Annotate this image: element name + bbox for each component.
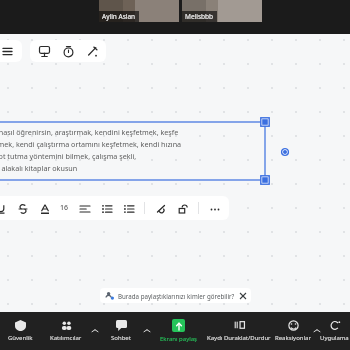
button[interactable]: Sohbet options	[144, 328, 150, 334]
button[interactable]: Katılımcılar options	[92, 328, 98, 334]
button[interactable]: 16	[60, 203, 69, 213]
staticText: e: kendin nasıl öğrenirsin, araştırmak, …	[0, 127, 179, 137]
button[interactable]: Güvenlik	[0, 312, 40, 350]
button[interactable]: Sohbet	[98, 312, 150, 350]
button[interactable]: Reaksiyonlar options	[314, 328, 320, 334]
button[interactable]: Close	[240, 293, 246, 299]
staticText: Katılımcılar	[50, 334, 82, 342]
staticText: Ekranı paylaş	[160, 335, 197, 343]
button[interactable]: Align	[78, 202, 91, 215]
button[interactable]: Kaydı Duraklat/Durdur	[206, 312, 272, 350]
button[interactable]: Bulleted list	[100, 202, 113, 215]
staticText: 16	[60, 203, 69, 213]
button[interactable]: Uygulamalar	[320, 312, 350, 350]
button[interactable]: Present	[37, 44, 51, 58]
staticText: temini bilmek, kendi çalıştırma ortamını…	[0, 139, 182, 149]
button[interactable]: Ekranı paylaş	[150, 312, 206, 350]
button[interactable]: Menu	[0, 40, 22, 62]
staticText: Uygulamalar	[320, 334, 350, 342]
button[interactable]: More	[208, 202, 221, 215]
staticText: Kaydı Duraklat/Durdur	[207, 334, 271, 342]
staticText: Melisbbb	[185, 12, 214, 21]
button[interactable]: Melisbbb	[182, 0, 262, 22]
button[interactable]: Burada paylaştıklarınızı kimler görebili…	[105, 288, 246, 303]
button[interactable]: Katılımcılar	[40, 312, 98, 350]
staticText: Güvenlik	[8, 334, 33, 342]
button[interactable]: Text color	[38, 202, 51, 215]
staticText: k, kendi not tutma yöntemini bilmek, çal…	[0, 151, 137, 161]
button[interactable]: Strikethrough	[16, 202, 29, 215]
staticText: Burada paylaştıklarınızı kimler görebili…	[118, 292, 235, 300]
staticText: Reaksiyonlar	[275, 334, 311, 342]
staticText: teknikerle alakalı kitaplar okusun	[0, 163, 78, 173]
button[interactable]: Reaksiyonlar	[272, 312, 320, 350]
staticText: Sohbet	[111, 334, 131, 342]
button[interactable]: Timer	[61, 44, 75, 58]
button[interactable]: Underline	[0, 202, 7, 215]
button[interactable]: Eraser	[154, 202, 167, 215]
button[interactable]: Numbered list	[122, 202, 135, 215]
button[interactable]: Lock	[176, 202, 189, 215]
button[interactable]: Aylin Aslan	[99, 0, 179, 22]
button[interactable]: Draw	[85, 44, 99, 58]
staticText: Aylin Aslan	[102, 12, 136, 21]
